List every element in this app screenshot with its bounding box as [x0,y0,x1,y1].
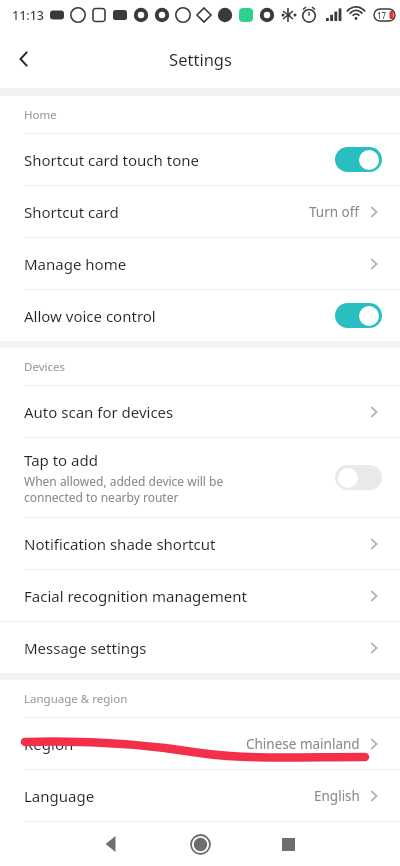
staticText: Language [24,786,95,806]
staticText: 17 [377,10,387,21]
button[interactable]: Region [0,718,400,769]
button[interactable]: Language [0,770,400,821]
staticText: Message settings [24,638,147,658]
button[interactable]: Manage home [0,238,400,289]
staticText: Shortcut card touch tone [24,150,199,170]
button[interactable]: Notification shade shortcut [0,518,400,569]
staticText: Devices [24,359,65,375]
button[interactable]: Message settings [0,622,400,673]
button[interactable]: Facial recognition management [0,570,400,621]
staticText: Turn off [309,203,360,221]
staticText: When allowed, added device will be conne… [24,473,224,505]
staticText: English [314,787,360,805]
button[interactable]: Auto scan for devices [0,386,400,437]
button[interactable]: Allow voice control [0,290,400,341]
staticText: Home [24,107,57,123]
staticText: Settings [169,48,232,70]
staticText: Notification shade shortcut [24,534,216,554]
staticText: Allow voice control [24,306,156,326]
staticText: Language & region [24,691,128,707]
staticText: Auto scan for devices [24,402,174,422]
button[interactable]: Back [0,35,48,83]
button[interactable]: Tap to add [0,438,400,517]
button[interactable]: On [335,147,382,172]
staticText: 11:13 [12,7,45,24]
staticText: Chinese mainland [246,735,360,753]
staticText: Facial recognition management [24,586,247,606]
button[interactable]: Home [178,822,222,866]
button[interactable]: Off [335,465,382,490]
button[interactable]: Shortcut card touch tone [0,134,400,185]
staticText: Manage home [24,254,127,274]
button[interactable]: Back [90,822,134,866]
button[interactable]: Shortcut card [0,186,400,237]
staticText: Tap to add [24,450,98,470]
button[interactable]: On [335,303,382,328]
staticText: Shortcut card [24,202,119,222]
button[interactable]: Recents [266,822,310,866]
staticText: Region [24,734,74,754]
